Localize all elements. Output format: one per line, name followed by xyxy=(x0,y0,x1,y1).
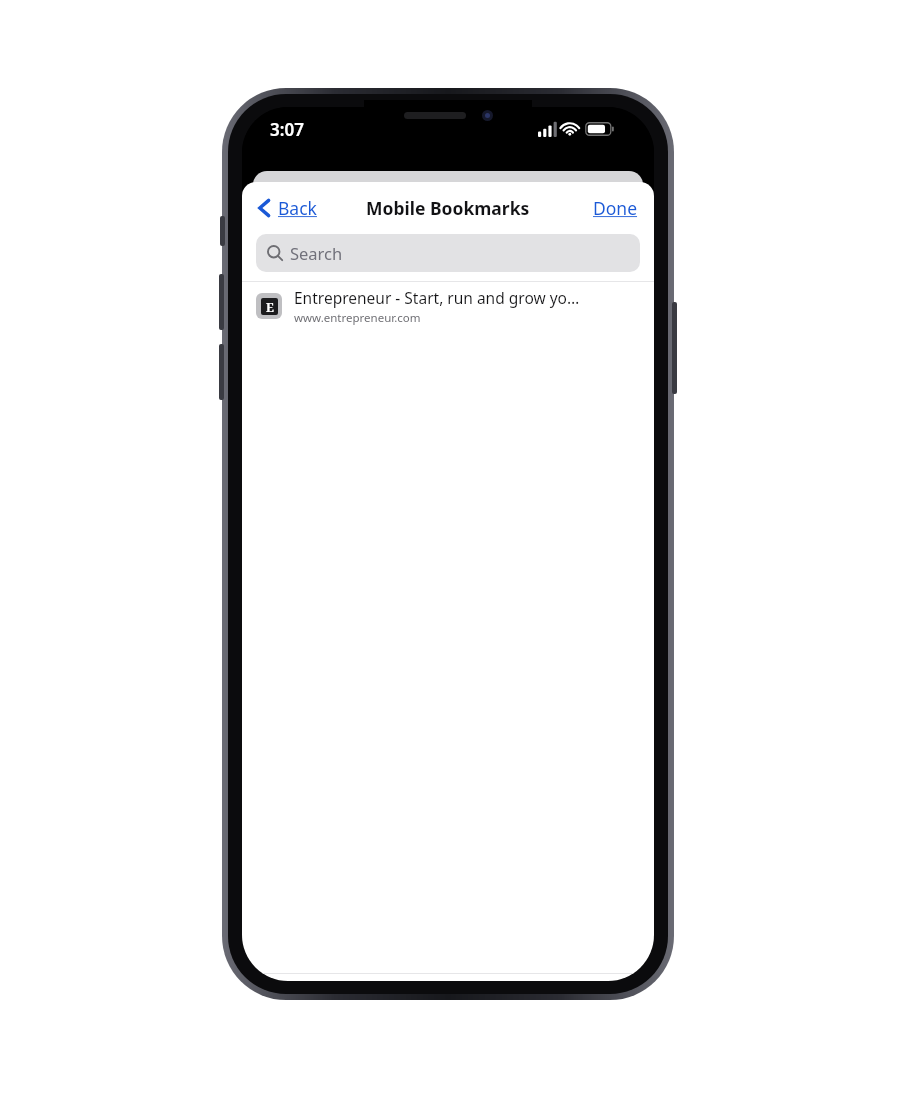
staticText: Done xyxy=(593,196,638,220)
staticText: 3:07 xyxy=(270,118,304,141)
staticText: Search xyxy=(290,242,343,264)
staticText: Entrepreneur - Start, run and grow yo… xyxy=(294,287,580,308)
button[interactable]: Back xyxy=(254,190,321,226)
staticText: Back xyxy=(278,196,317,220)
staticText: www.entrepreneur.com xyxy=(294,310,421,326)
staticText: Mobile Bookmarks xyxy=(366,196,530,220)
button[interactable]: E xyxy=(242,282,654,330)
button[interactable]: Done xyxy=(589,190,642,226)
button[interactable]: Search xyxy=(256,234,640,272)
staticText: E xyxy=(266,299,274,315)
